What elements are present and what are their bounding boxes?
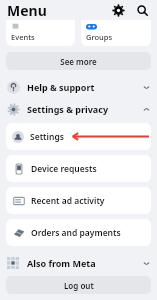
staticText: Recent ad activity bbox=[31, 195, 105, 207]
staticText: Device requests bbox=[31, 163, 97, 175]
staticText: Also from Meta bbox=[27, 257, 96, 269]
staticText: Settings & privacy bbox=[27, 103, 109, 115]
button[interactable]: Device requests bbox=[6, 155, 151, 182]
staticText: Groups bbox=[86, 32, 113, 42]
button[interactable]: Log out bbox=[6, 276, 151, 294]
button[interactable]: Groups bbox=[81, 20, 151, 46]
staticText: Orders and payments bbox=[31, 227, 121, 239]
button[interactable]: Events bbox=[6, 20, 75, 46]
staticText: Help & support bbox=[27, 81, 95, 93]
button[interactable]: Orders and payments bbox=[6, 219, 151, 246]
staticText: Menu bbox=[7, 1, 47, 20]
staticText: Settings bbox=[30, 131, 64, 143]
button[interactable]: Settings bbox=[6, 123, 151, 150]
button[interactable]: Search bbox=[133, 1, 151, 19]
staticText: See more bbox=[60, 56, 97, 67]
staticText: Log out bbox=[64, 280, 94, 291]
staticText: Events bbox=[11, 32, 35, 42]
button[interactable]: Settings & privacy bbox=[0, 98, 157, 120]
button[interactable]: Also from Meta bbox=[0, 252, 157, 274]
button[interactable]: Settings bbox=[109, 1, 127, 19]
button[interactable]: See more bbox=[6, 52, 151, 70]
button[interactable]: Help & support bbox=[0, 76, 157, 98]
button[interactable]: Recent ad activity bbox=[6, 187, 151, 214]
